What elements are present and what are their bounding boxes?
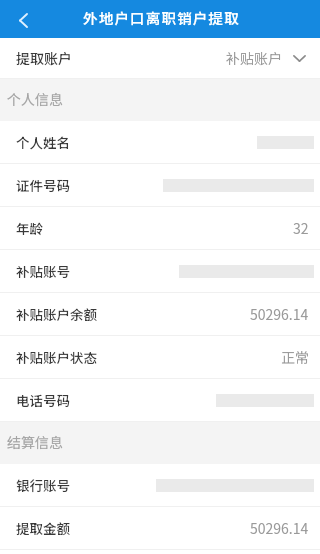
staticText: 提取金额 <box>16 518 70 538</box>
button[interactable]: 银行账号 <box>0 464 320 507</box>
button[interactable]: 补贴账户余额 <box>0 293 320 336</box>
staticText: 补贴账户 <box>226 48 282 68</box>
staticText: 电话号码 <box>16 390 70 410</box>
staticText: 提取账户 <box>16 48 72 68</box>
button[interactable]: Back <box>0 0 47 38</box>
button[interactable]: 补贴账户状态 <box>0 336 320 379</box>
staticText: 正常 <box>281 347 309 367</box>
staticText: 个人信息 <box>7 89 63 109</box>
staticText: 外地户口离职销户提取 <box>83 7 240 28</box>
button[interactable]: 电话号码 <box>0 379 320 422</box>
button[interactable]: 年龄 <box>0 207 320 250</box>
staticText: 补贴账号 <box>16 261 70 281</box>
staticText: 证件号码 <box>16 175 70 195</box>
button[interactable]: 提取金额 <box>0 507 320 550</box>
staticText: 50296.14 <box>250 304 309 324</box>
button[interactable]: 个人姓名 <box>0 121 320 164</box>
staticText: 年龄 <box>16 218 43 238</box>
button[interactable]: 补贴账号 <box>0 250 320 293</box>
button[interactable]: 证件号码 <box>0 164 320 207</box>
staticText: 补贴账户余额 <box>16 304 97 324</box>
staticText: 32 <box>293 218 309 238</box>
staticText: 补贴账户状态 <box>16 347 97 367</box>
button[interactable]: 提取账户 <box>0 38 320 79</box>
staticText: 结算信息 <box>7 432 63 452</box>
staticText: 个人姓名 <box>16 132 70 152</box>
staticText: 银行账号 <box>16 475 70 495</box>
staticText: 50296.14 <box>250 518 309 538</box>
